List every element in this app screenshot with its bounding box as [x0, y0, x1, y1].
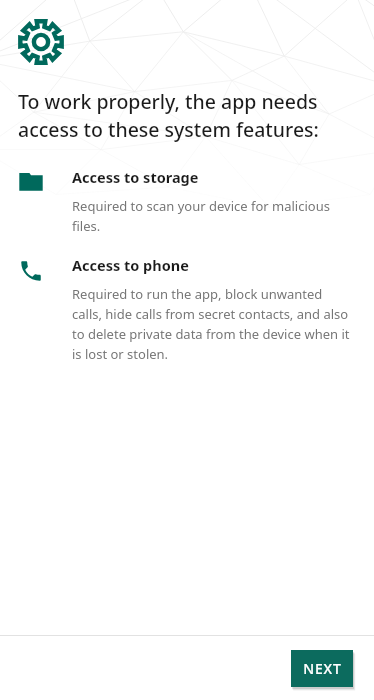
staticText: Required to scan your device for malicio…	[72, 197, 352, 235]
staticText: Access to phone	[72, 255, 189, 275]
button[interactable]: NEXT	[291, 650, 353, 687]
staticText: NEXT	[303, 659, 342, 678]
staticText: To work properly, the app needs access t…	[18, 88, 319, 143]
button[interactable]: Storage	[0, 167, 374, 235]
staticText: Required to run the app, block unwanted …	[72, 285, 352, 363]
other: Storage	[18, 170, 44, 196]
button[interactable]: Phone	[0, 255, 374, 363]
other: Phone	[18, 258, 44, 284]
staticText: Access to storage	[72, 167, 199, 187]
